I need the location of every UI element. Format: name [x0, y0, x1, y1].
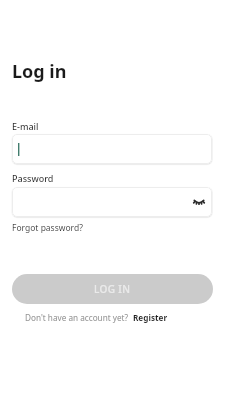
staticText: E-mail — [12, 120, 39, 132]
staticText: Don't have an account yet? — [25, 312, 129, 323]
button[interactable] — [12, 134, 212, 164]
staticText: Register — [133, 312, 168, 323]
staticText: Password — [12, 172, 54, 184]
staticText: Log in — [12, 59, 67, 84]
button[interactable]: Register — [133, 312, 168, 323]
staticText: LOG IN — [94, 282, 131, 296]
button[interactable]: LOG IN — [12, 274, 213, 304]
button[interactable]: Show password — [12, 187, 212, 217]
button[interactable]: Show password — [187, 190, 211, 214]
button[interactable]: Forgot password? — [12, 222, 83, 234]
staticText: Forgot password? — [12, 222, 83, 234]
